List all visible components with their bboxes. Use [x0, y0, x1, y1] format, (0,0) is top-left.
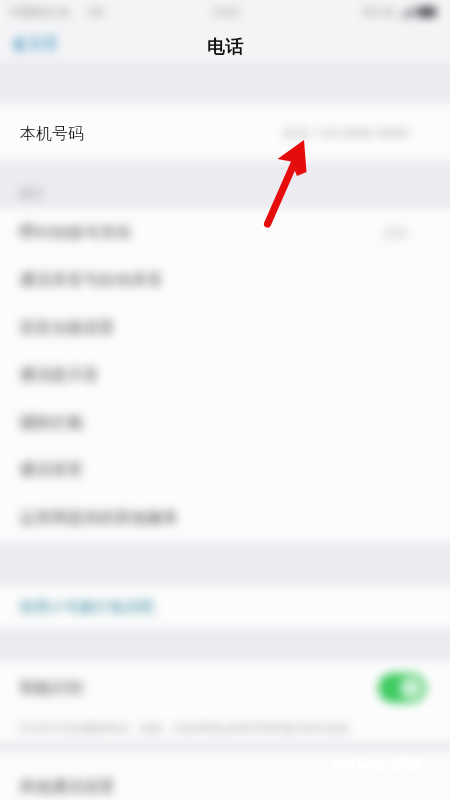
staticText: 使用小号拨打电话吧: [19, 598, 154, 617]
button[interactable]: 通话录音与自动录音: [0, 256, 450, 304]
staticText: 骚扰拦截: [19, 413, 83, 433]
staticText: 设置: [27, 34, 59, 54]
button[interactable]: 呼叫转移与等待: [0, 209, 450, 256]
button[interactable]: 通话提示音: [0, 351, 450, 399]
staticText: 开启后可识别骚扰电话、快递、外卖等陌生来电号码并显示标记信息: [19, 721, 349, 735]
staticText: 运营商提供的其他服务: [19, 508, 179, 528]
staticText: 电话: [207, 36, 243, 59]
staticText: 10:42: [211, 4, 240, 19]
staticText: 中国移动 4G: [9, 4, 71, 19]
staticText: 其他通话设置: [19, 777, 115, 797]
staticText: 关闭: [382, 225, 408, 241]
staticText: 通话提示音: [19, 365, 99, 385]
button[interactable]: 未知 138 8888 8888: [0, 104, 450, 160]
staticText: 呼叫转移与等待: [19, 223, 131, 243]
button[interactable]: 使用小号拨打电话吧: [0, 586, 450, 628]
button[interactable]: 返回设置: [11, 31, 62, 57]
other: 智能识别开关: [378, 673, 426, 703]
button[interactable]: 语音信箱设置: [0, 304, 450, 351]
staticText: HD: [88, 4, 105, 19]
staticText: 通话: [19, 186, 43, 201]
button[interactable]: 通话背景: [0, 446, 450, 494]
staticText: 本机号码: [20, 124, 84, 144]
button[interactable]: 其他通话设置: [0, 774, 450, 800]
staticText: 智能识别: [19, 678, 83, 698]
staticText: 通话背景: [19, 460, 83, 480]
button[interactable]: 智能识别: [0, 661, 450, 714]
button[interactable]: 骚扰拦截: [0, 399, 450, 446]
staticText: 未知 138 8888 8888: [282, 123, 410, 142]
button[interactable]: 运营商提供的其他服务: [0, 494, 450, 541]
staticText: HD 4G: [362, 4, 396, 19]
staticText: 通话录音与自动录音: [19, 270, 163, 290]
staticText: 语音信箱设置: [19, 318, 115, 338]
